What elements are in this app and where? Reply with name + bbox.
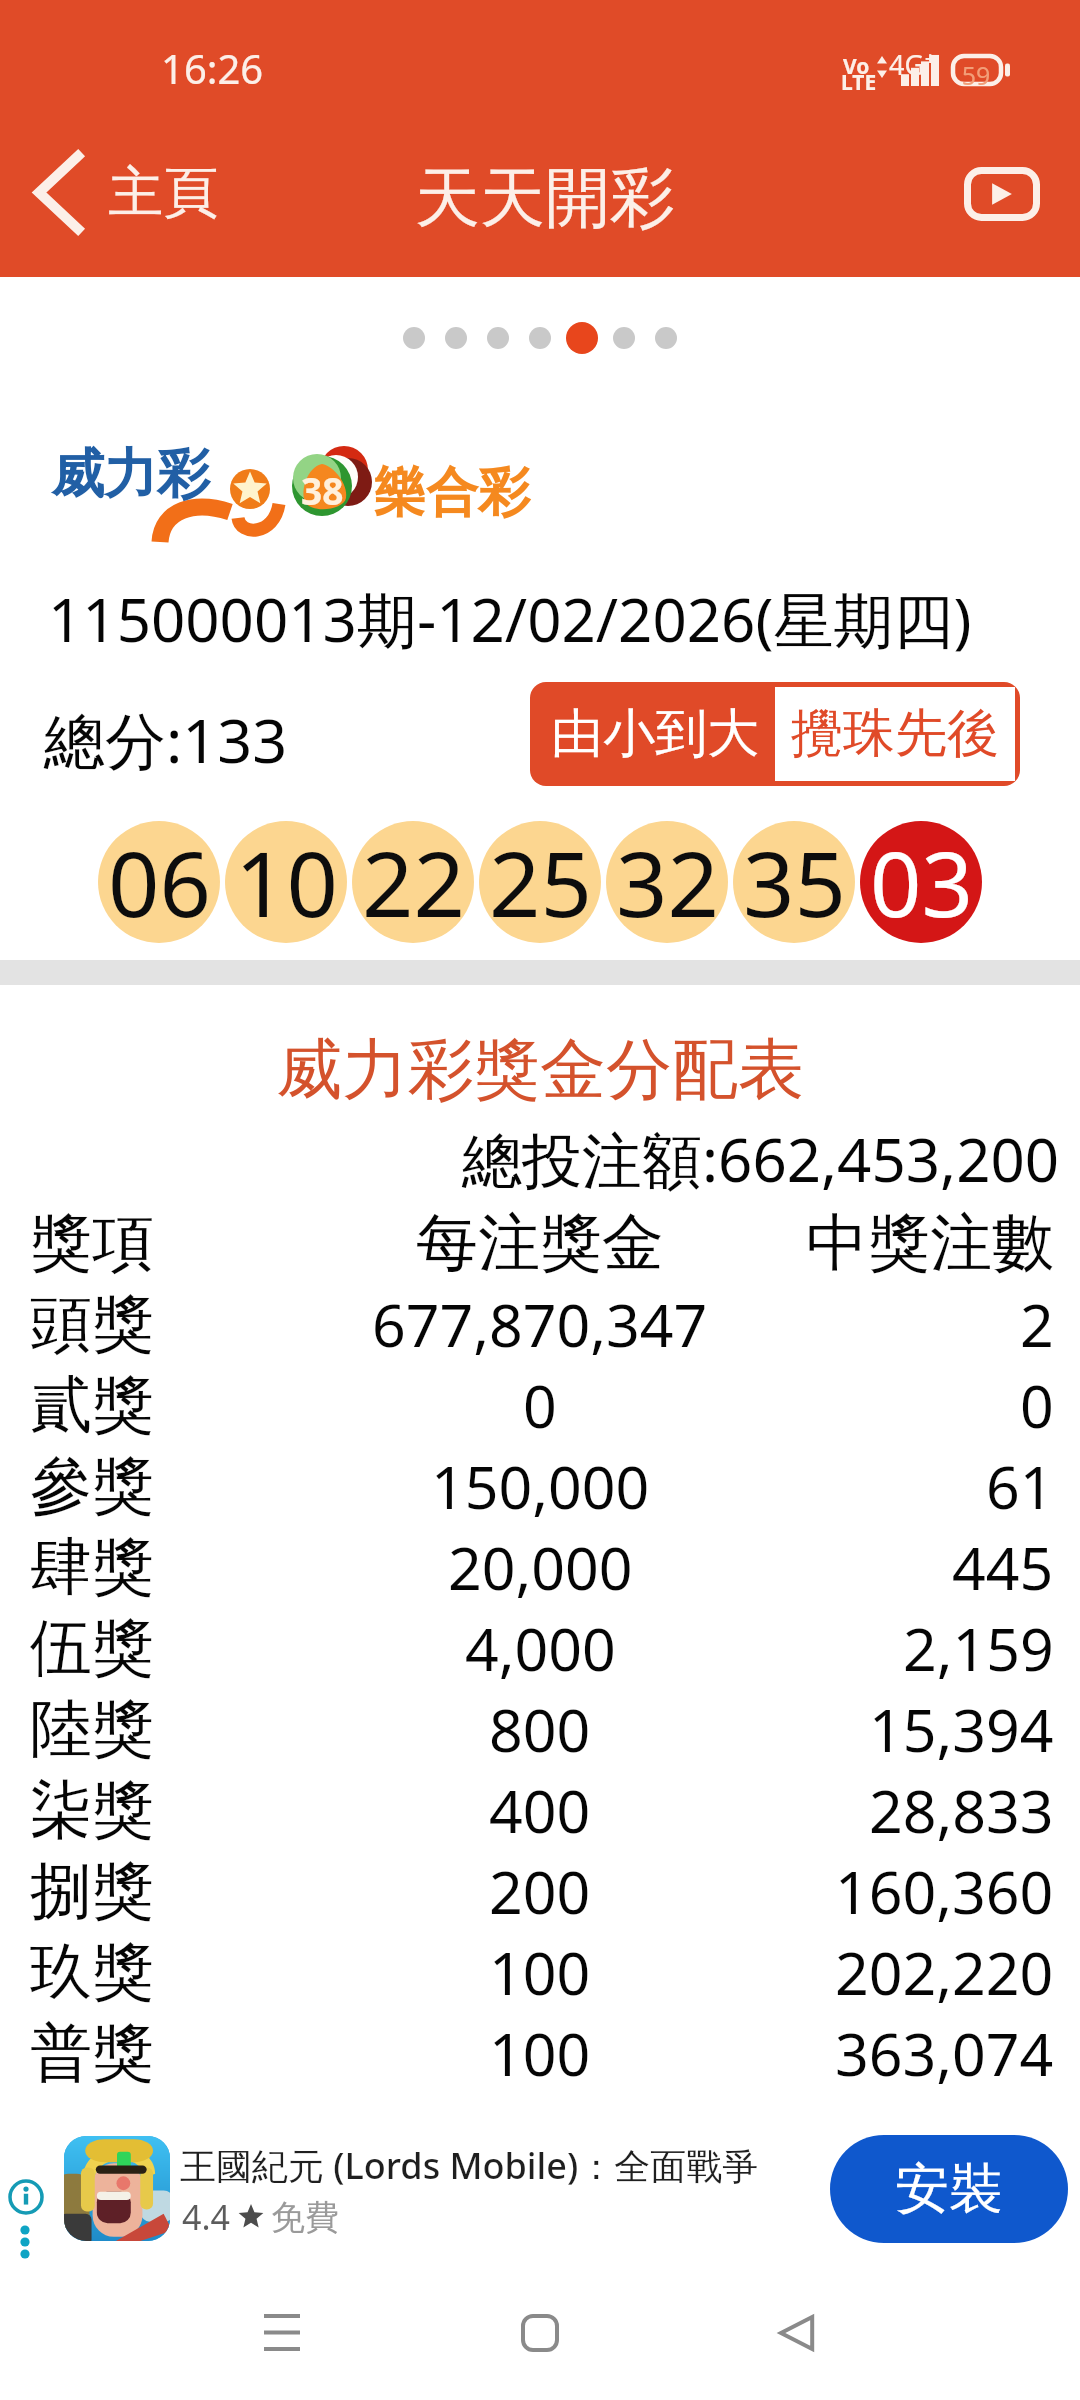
staticText: 王國紀元 (Lords Mobile)：全面戰爭	[180, 2141, 880, 2190]
staticText: 28,833	[869, 1770, 1054, 1850]
button[interactable]: 安裝	[830, 2135, 1068, 2243]
staticText: 參獎	[30, 1447, 154, 1525]
staticText: 03	[870, 821, 973, 943]
staticText: 免費	[271, 2196, 339, 2239]
staticText: 20,000	[448, 1527, 633, 1607]
staticText: 0	[523, 1365, 557, 1445]
staticText: 總分:133	[44, 698, 288, 781]
staticText: 每注獎金	[416, 1204, 664, 1282]
staticText: 61	[986, 1446, 1054, 1526]
staticText: 肆獎	[30, 1528, 154, 1606]
staticText: 10	[235, 821, 338, 943]
staticText: 100	[489, 2013, 591, 2093]
staticText: 貳獎	[30, 1366, 154, 1444]
staticText: 威力彩	[51, 441, 210, 508]
staticText: 捌獎	[30, 1852, 154, 1930]
staticText: Vo	[843, 52, 870, 81]
staticText: 伍獎	[30, 1609, 154, 1687]
button[interactable]: Back	[737, 2283, 857, 2383]
staticText: 32	[616, 821, 719, 943]
staticText: +	[925, 46, 936, 71]
button[interactable]: Page indicator, page 5 of 7	[396, 310, 684, 366]
staticText: 445	[952, 1527, 1054, 1607]
staticText: 普獎	[30, 2014, 154, 2092]
staticText: 22	[362, 821, 465, 943]
button[interactable]: 由小到大	[535, 687, 775, 781]
staticText: 2	[1020, 1284, 1054, 1364]
staticText: 頭獎	[30, 1285, 154, 1363]
button[interactable]: Recent apps	[222, 2283, 342, 2383]
staticText: 160,360	[835, 1851, 1054, 1931]
staticText: 陸獎	[30, 1690, 154, 1768]
staticText: 威力彩獎金分配表	[276, 1028, 804, 1111]
staticText: LTE	[841, 68, 877, 97]
staticText: 35	[743, 821, 846, 943]
staticText: 59	[954, 58, 998, 92]
staticText: 獎項	[30, 1204, 154, 1282]
staticText: 總投注額:662,453,200	[462, 1118, 1060, 1200]
staticText: 玖獎	[30, 1933, 154, 2011]
staticText: 主頁	[108, 158, 218, 227]
staticText: 363,074	[835, 2013, 1054, 2093]
button[interactable]: Home	[480, 2283, 600, 2383]
staticText: 4.4	[182, 2194, 231, 2240]
staticText: 150,000	[431, 1446, 650, 1526]
staticText: 16:26	[161, 41, 264, 95]
staticText: 安裝	[895, 2155, 1003, 2223]
staticText: 4,000	[465, 1608, 616, 1688]
staticText: 由小到大	[551, 701, 759, 767]
staticText: 25	[489, 821, 592, 943]
staticText: 樂合彩	[374, 460, 530, 526]
staticText: 攪珠先後	[791, 701, 999, 767]
staticText: 677,870,347	[372, 1284, 708, 1364]
staticText: 4G	[889, 46, 925, 83]
staticText: 38	[301, 465, 344, 515]
button[interactable]: 主頁	[24, 145, 226, 240]
staticText: 06	[108, 821, 211, 943]
button[interactable]: 攪珠先後	[775, 687, 1015, 781]
staticText: 200	[489, 1851, 591, 1931]
staticText: 中獎注數	[806, 1204, 1054, 1282]
staticText: 202,220	[835, 1932, 1054, 2012]
button[interactable]: YouTube	[949, 150, 1055, 238]
staticText: 天天開彩	[415, 157, 675, 239]
staticText: 800	[489, 1689, 591, 1769]
staticText: 15,394	[869, 1689, 1054, 1769]
staticText: 0	[1020, 1365, 1054, 1445]
staticText: 100	[489, 1932, 591, 2012]
staticText: 柒獎	[30, 1771, 154, 1849]
staticText: 400	[489, 1770, 591, 1850]
staticText: 2,159	[903, 1608, 1054, 1688]
staticText: 115000013期-12/02/2026(星期四)	[48, 578, 972, 660]
button[interactable]: 王國紀元 (Lords Mobile)：全面戰爭 advertisement	[56, 2110, 816, 2280]
